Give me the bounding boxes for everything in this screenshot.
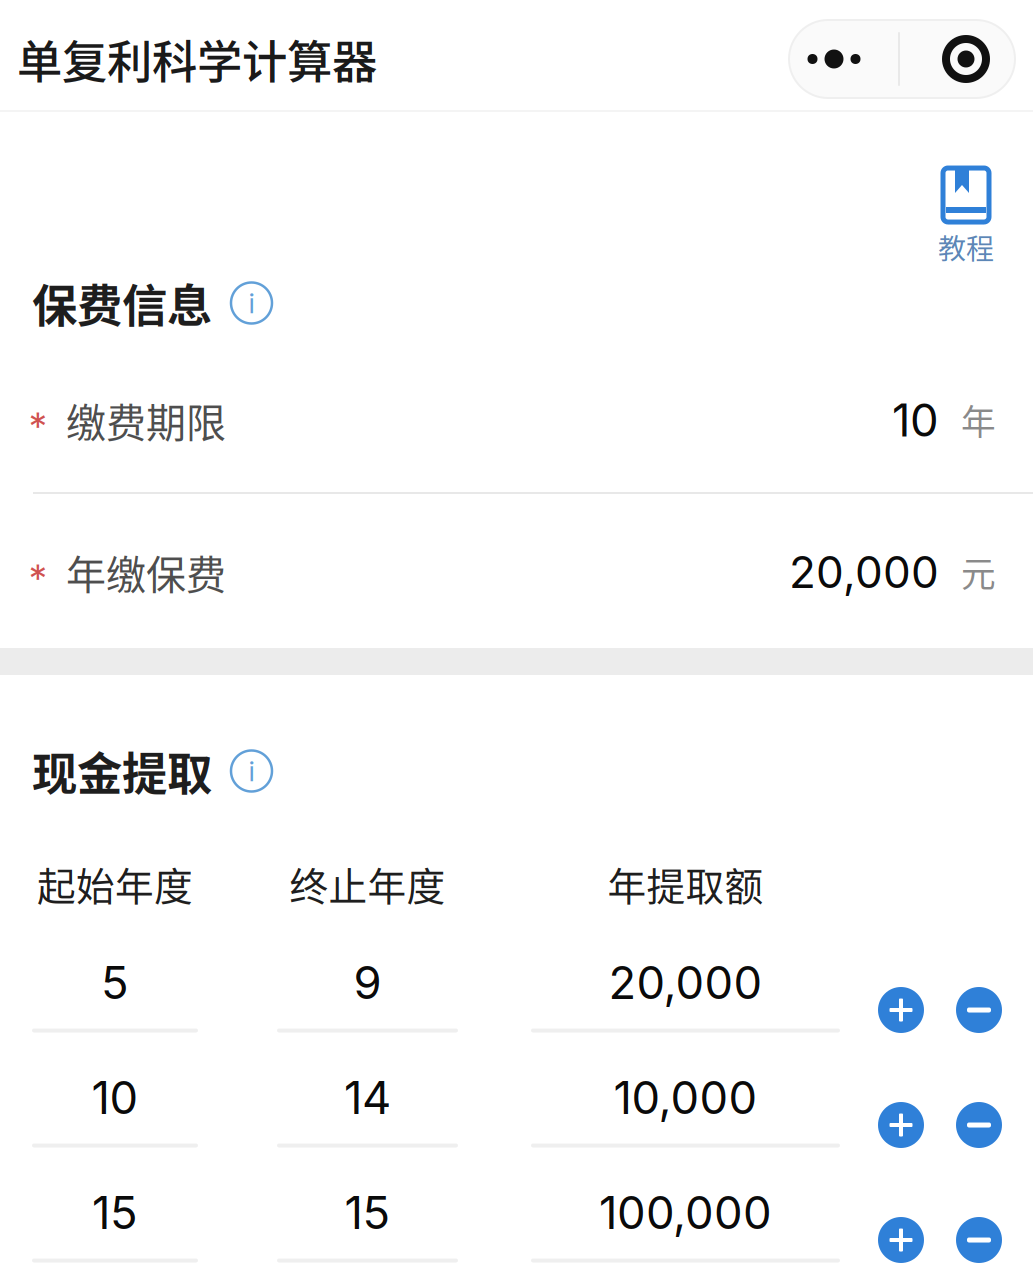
staticText: 15 <box>344 1185 390 1240</box>
staticText: 保费信息 <box>32 270 212 336</box>
staticText: i <box>248 286 254 320</box>
button[interactable]: 删除一行 <box>956 987 1002 1033</box>
button[interactable]: 删除一行 <box>956 1217 1002 1263</box>
staticText: 10 <box>892 393 939 447</box>
staticText: 元 <box>961 547 996 597</box>
staticText: 年缴保费 <box>66 543 226 601</box>
staticText: 10,000 <box>613 1070 757 1125</box>
button[interactable]: 增加一行 <box>878 1102 924 1148</box>
button[interactable]: 增加一行 <box>878 987 924 1033</box>
staticText: 14 <box>344 1070 391 1125</box>
staticText: 5 <box>101 955 129 1010</box>
staticText: * <box>29 555 47 601</box>
staticText: 9 <box>353 955 381 1010</box>
staticText: i <box>248 754 254 788</box>
button[interactable]: 增加一行 <box>878 1217 924 1263</box>
button[interactable]: 更多 <box>789 20 1015 98</box>
staticText: 单复利科学计算器 <box>17 26 377 92</box>
button[interactable]: 删除一行 <box>956 1102 1002 1148</box>
staticText: 缴费期限 <box>66 391 226 449</box>
staticText: 20,000 <box>608 955 762 1010</box>
staticText: 终止年度 <box>289 856 445 912</box>
staticText: 10 <box>91 1070 138 1125</box>
staticText: 20,000 <box>789 545 939 599</box>
staticText: 15 <box>92 1185 138 1240</box>
staticText: 年提取额 <box>607 856 763 912</box>
button[interactable]: 教程 <box>931 162 1001 266</box>
staticText: 现金提取 <box>32 738 212 804</box>
staticText: * <box>29 403 47 449</box>
staticText: 100,000 <box>599 1185 772 1240</box>
staticText: 教程 <box>938 227 994 267</box>
staticText: 起始年度 <box>37 856 193 912</box>
staticText: 年 <box>961 395 996 445</box>
